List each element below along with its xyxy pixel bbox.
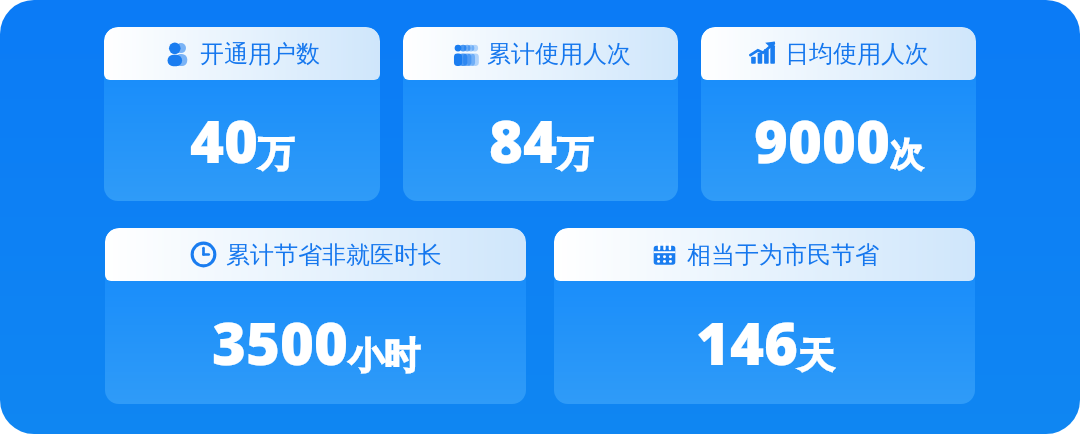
other: Daily average [749, 40, 776, 67]
button[interactable]: Days saved [554, 228, 975, 404]
other: Days saved [651, 241, 678, 268]
staticText: 天 [798, 333, 834, 378]
other: Users [164, 40, 191, 67]
button[interactable]: Daily average [701, 27, 976, 201]
staticText: 累计使用人次 [487, 39, 631, 69]
staticText: 9000 [754, 101, 890, 180]
staticText: 84 [489, 101, 557, 180]
staticText: 3500 [212, 303, 348, 382]
other: Total visits [451, 40, 478, 67]
button[interactable]: Users [104, 27, 380, 201]
staticText: 相当于为市民节省 [687, 240, 879, 270]
staticText: 万 [258, 131, 294, 176]
staticText: 开通用户数 [200, 39, 320, 69]
other: Time saved [190, 241, 217, 268]
button[interactable]: Total visits [403, 27, 678, 201]
staticText: 累计节省非就医时长 [226, 240, 442, 270]
staticText: 日均使用人次 [785, 39, 929, 69]
staticText: 万 [557, 131, 593, 176]
staticText: 146 [696, 303, 798, 382]
staticText: 小时 [348, 333, 420, 378]
staticText: 次 [890, 134, 923, 176]
button[interactable]: Time saved [105, 228, 526, 404]
staticText: 40 [190, 101, 258, 180]
